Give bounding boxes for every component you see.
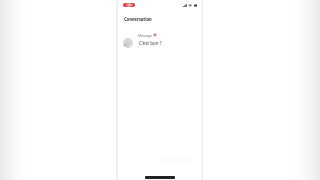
staticText: C'est bon ? [139,39,162,46]
button[interactable]: Conversation with Message, C'est bon ? [117,30,202,50]
staticText: Conversation [124,15,152,22]
button[interactable]: Signal, Wi-Fi and battery status [181,1,198,9]
button[interactable]: Profile picture [123,38,133,48]
button[interactable]: Recording indicator [123,3,135,7]
staticText: Message [138,33,152,37]
